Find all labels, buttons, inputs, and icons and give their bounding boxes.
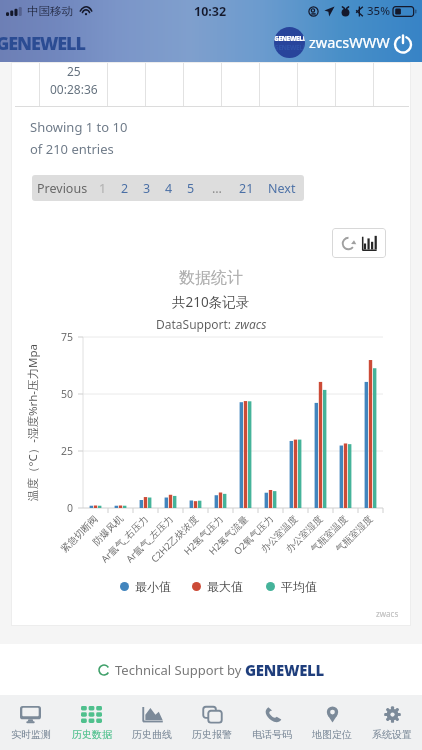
staticText: 数据统计 [179, 268, 243, 288]
button[interactable]: 2 [114, 175, 136, 201]
staticText: 25 [67, 63, 81, 79]
button[interactable]: 实时监测 [0, 695, 61, 750]
staticText: Previous [37, 180, 88, 197]
staticText: Showing 1 to 10 [30, 118, 128, 136]
staticText: zwacs [376, 608, 399, 619]
button[interactable]: Next [260, 175, 304, 201]
staticText: 共210条记录 [172, 293, 250, 311]
staticText: of 210 entries [30, 140, 114, 158]
button[interactable]: 地图定位 [302, 695, 362, 750]
staticText: 35% [367, 3, 390, 19]
button[interactable]: Power / Logout [389, 29, 416, 56]
button[interactable]: 1 [92, 175, 114, 201]
staticText: 1 [99, 180, 107, 197]
button[interactable]: 3 [136, 175, 158, 201]
staticText: 实时监测 [11, 728, 51, 741]
staticText: zwacs [235, 316, 267, 332]
staticText: 历史报警 [192, 728, 232, 741]
staticText: 3 [143, 180, 151, 197]
staticText: 4 [165, 180, 173, 197]
staticText: 21 [239, 180, 254, 197]
button[interactable]: 电话号码 [242, 695, 302, 750]
staticText: 2 [121, 180, 129, 197]
staticText: 电话号码 [252, 728, 292, 741]
staticText: GENEWELL [0, 31, 85, 56]
staticText: 平均值 [281, 579, 317, 594]
staticText: Next [268, 180, 296, 197]
staticText: 10:32 [194, 3, 227, 20]
staticText: 地图定位 [312, 728, 352, 741]
staticText: GENEWELL [245, 660, 324, 680]
staticText: 历史数据 [72, 728, 112, 741]
staticText: GENEWELL [274, 43, 305, 52]
button[interactable]: 历史曲线 [122, 695, 182, 750]
button[interactable]: 历史数据 [61, 695, 122, 750]
staticText: 00:28:36 [50, 81, 98, 97]
button[interactable]: 4 [158, 175, 180, 201]
staticText: zwacsWWW [309, 32, 390, 52]
button[interactable]: Refresh chart [332, 228, 386, 258]
button[interactable]: … [202, 175, 232, 201]
button[interactable]: 系统设置 [362, 695, 422, 750]
button[interactable]: Previous [32, 175, 92, 201]
staticText: DataSupport: [156, 316, 235, 332]
button[interactable]: 5 [180, 175, 202, 201]
button[interactable]: 21 [232, 175, 260, 201]
staticText: 最大值 [207, 579, 243, 594]
staticText: GENEWELL [274, 34, 305, 43]
staticText: 5 [187, 180, 195, 197]
staticText: … [212, 180, 222, 197]
staticText: 中国移动 [27, 4, 73, 18]
staticText: 系统设置 [372, 728, 412, 741]
staticText: 最小值 [135, 579, 171, 594]
staticText: 历史曲线 [132, 728, 172, 741]
button[interactable]: 历史报警 [182, 695, 242, 750]
staticText: Technical Support by [115, 661, 245, 679]
